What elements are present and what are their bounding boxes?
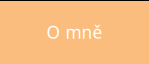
button[interactable]: O mně — [0, 0, 149, 64]
staticText: O mně — [46, 20, 102, 43]
